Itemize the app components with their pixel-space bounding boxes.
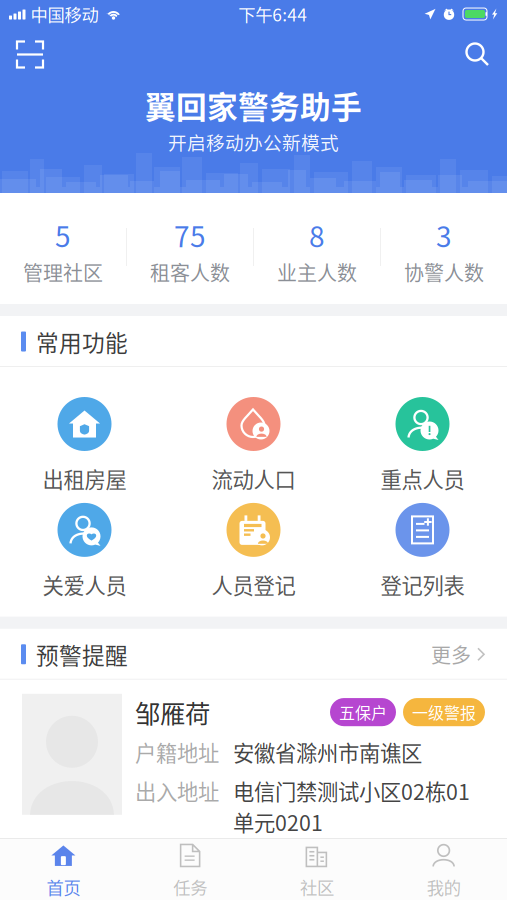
staticText: 重点人员: [380, 463, 464, 494]
staticText: 2019-08-26 12:33: [233, 852, 402, 883]
staticText: 任务: [173, 874, 207, 900]
staticText: 3: [436, 215, 452, 255]
staticText: 协警人数: [404, 257, 484, 286]
staticText: 出入地址: [135, 775, 219, 806]
staticText: 出入时间: [135, 852, 219, 883]
staticText: 流动人口: [211, 463, 295, 494]
staticText: 预警提醒: [36, 638, 128, 671]
staticText: 8: [309, 215, 325, 255]
staticText: 业主人数: [277, 257, 357, 286]
button[interactable]: 流动人口: [169, 397, 338, 494]
staticText: 首页: [46, 874, 80, 900]
staticText: 5: [55, 215, 71, 255]
staticText: 关爱人员: [42, 569, 126, 600]
staticText: 电信门禁测试小区02栋01单元0201: [233, 775, 470, 837]
button[interactable]: 登记列表: [338, 503, 507, 600]
staticText: 出租房屋: [42, 463, 126, 494]
button[interactable]: 搜索: [453, 29, 499, 75]
button[interactable]: 出租房屋: [0, 397, 169, 494]
button[interactable]: 任务: [127, 833, 254, 900]
staticText: 登记列表: [380, 569, 464, 600]
staticText: 开启移动办公新模式: [168, 128, 339, 155]
staticText: 下午6:44: [238, 1, 307, 27]
button[interactable]: 邹雁荷: [0, 680, 507, 883]
staticText: 社区: [300, 874, 334, 900]
staticText: 翼回家警务助手: [145, 83, 362, 127]
button[interactable]: 社区: [253, 833, 380, 900]
button[interactable]: 首页: [0, 833, 127, 900]
button[interactable]: 更多: [431, 640, 486, 669]
staticText: 中国移动: [30, 1, 98, 27]
staticText: 管理社区: [23, 257, 103, 286]
button[interactable]: 重点人员: [338, 397, 507, 494]
button[interactable]: 人员登记: [169, 503, 338, 600]
staticText: 租客人数: [150, 257, 230, 286]
staticText: 户籍地址: [135, 736, 219, 767]
staticText: 邹雁荷: [135, 694, 210, 730]
staticText: 一级警报: [412, 700, 476, 724]
staticText: 安徽省滁州市南谯区: [233, 736, 422, 767]
button[interactable]: 关爱人员: [0, 503, 169, 600]
button[interactable]: 我的: [380, 833, 507, 900]
button[interactable]: 扫一扫: [8, 28, 55, 75]
staticText: 人员登记: [211, 569, 295, 600]
staticText: 常用功能: [36, 325, 128, 358]
staticText: 我的: [427, 874, 461, 900]
staticText: 更多: [431, 640, 471, 669]
staticText: 五保户: [339, 700, 387, 724]
staticText: 75: [174, 215, 206, 255]
